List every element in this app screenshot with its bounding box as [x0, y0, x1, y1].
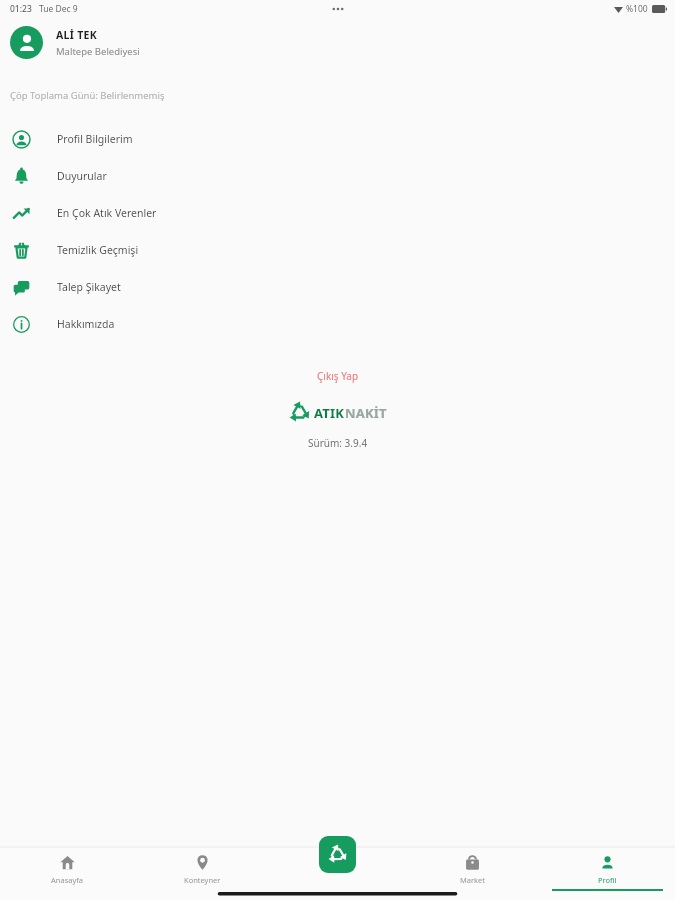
- button[interactable]: ALİ TEK: [0, 18, 675, 67]
- button[interactable]: En Çok Atık Verenler: [0, 194, 675, 231]
- staticText: %100: [626, 3, 648, 15]
- staticText: Anasayfa: [51, 875, 84, 885]
- staticText: Sürüm: 3.9.4: [308, 436, 368, 450]
- button[interactable]: Anasayfa: [0, 847, 135, 900]
- button[interactable]: Profil Bilgilerim: [0, 120, 675, 157]
- button[interactable]: Talep Şikayet: [0, 268, 675, 305]
- button[interactable]: Temizlik Geçmişi: [0, 231, 675, 268]
- staticText: Talep Şikayet: [57, 280, 121, 294]
- staticText: Maltepe Belediyesi: [56, 45, 140, 58]
- staticText: Temizlik Geçmişi: [57, 243, 139, 257]
- staticText: En Çok Atık Verenler: [57, 206, 157, 220]
- button[interactable]: Çıkış Yap: [299, 366, 377, 386]
- staticText: ATIK: [314, 404, 345, 422]
- button[interactable]: Market: [405, 847, 540, 900]
- button[interactable]: Profil: [540, 847, 675, 900]
- staticText: Tue Dec 9: [39, 3, 78, 15]
- staticText: Hakkımızda: [57, 317, 115, 331]
- staticText: Duyurular: [57, 169, 107, 183]
- button[interactable]: Hakkımızda: [0, 305, 675, 342]
- staticText: ALİ TEK: [56, 28, 97, 42]
- button[interactable]: Duyurular: [0, 157, 675, 194]
- staticText: Çöp Toplama Günü: Belirlenmemiş: [10, 89, 165, 102]
- staticText: 01:23: [10, 3, 32, 15]
- button[interactable]: Konteyner: [135, 847, 270, 900]
- staticText: Profil Bilgilerim: [57, 132, 133, 146]
- staticText: Konteyner: [184, 875, 221, 885]
- staticText: NAKİT: [345, 404, 387, 422]
- button[interactable]: Geri Dönüşüm: [319, 836, 356, 873]
- staticText: Profil: [598, 875, 617, 885]
- staticText: Çıkış Yap: [317, 369, 359, 383]
- staticText: Market: [460, 875, 486, 885]
